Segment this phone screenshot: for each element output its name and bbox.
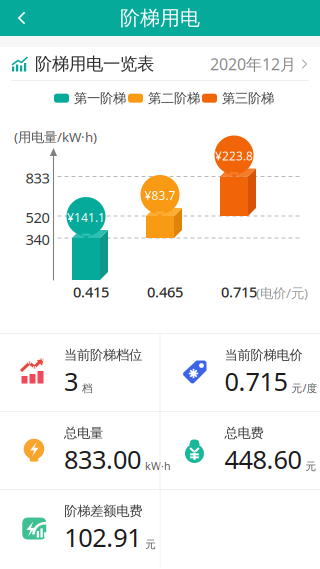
- staticText: 总电量: [64, 425, 103, 441]
- staticText: 0.465: [147, 282, 183, 301]
- button[interactable]: Back: [0, 0, 42, 36]
- staticText: 元/度: [291, 381, 317, 395]
- staticText: 第三阶梯: [222, 90, 274, 106]
- staticText: (用电量/kW·h): [14, 128, 97, 146]
- staticText: 833.00: [64, 442, 141, 476]
- staticText: 当前阶梯电价: [224, 347, 302, 363]
- staticText: (电价/元): [256, 284, 308, 302]
- staticText: 102.91: [64, 520, 141, 554]
- staticText: 元: [145, 538, 156, 551]
- staticText: 当前阶梯档位: [64, 347, 142, 363]
- staticText: 520: [25, 207, 49, 227]
- staticText: 2020年12月: [210, 53, 296, 75]
- staticText: 0.715: [224, 364, 287, 398]
- staticText: 3: [64, 364, 78, 398]
- staticText: 总电费: [224, 425, 263, 441]
- staticText: 833: [25, 168, 49, 187]
- staticText: ¥83.7: [144, 187, 175, 203]
- staticText: 340: [25, 229, 49, 249]
- staticText: 阶梯差额电费: [64, 503, 142, 519]
- staticText: 448.60: [224, 442, 301, 476]
- staticText: 阶梯用电一览表: [35, 53, 154, 75]
- staticText: 0.415: [73, 282, 109, 301]
- staticText: 阶梯用电: [120, 6, 200, 30]
- staticText: kW·h: [145, 459, 171, 473]
- staticText: ¥141.1: [67, 209, 105, 225]
- button[interactable]: 当前阶梯档位: [0, 334, 159, 411]
- button[interactable]: 总电费: [160, 412, 320, 489]
- staticText: ¥223.8: [215, 148, 253, 164]
- button[interactable]: 当前阶梯电价: [160, 334, 320, 411]
- button[interactable]: 总电量: [0, 412, 159, 489]
- staticText: 档: [82, 382, 93, 395]
- staticText: 第一阶梯: [74, 90, 126, 106]
- button[interactable]: 2020年12月: [210, 47, 308, 81]
- staticText: 第二阶梯: [148, 90, 200, 106]
- staticText: 元: [305, 460, 316, 473]
- staticText: 0.715: [221, 282, 257, 301]
- button[interactable]: 阶梯差额电费: [0, 490, 160, 567]
